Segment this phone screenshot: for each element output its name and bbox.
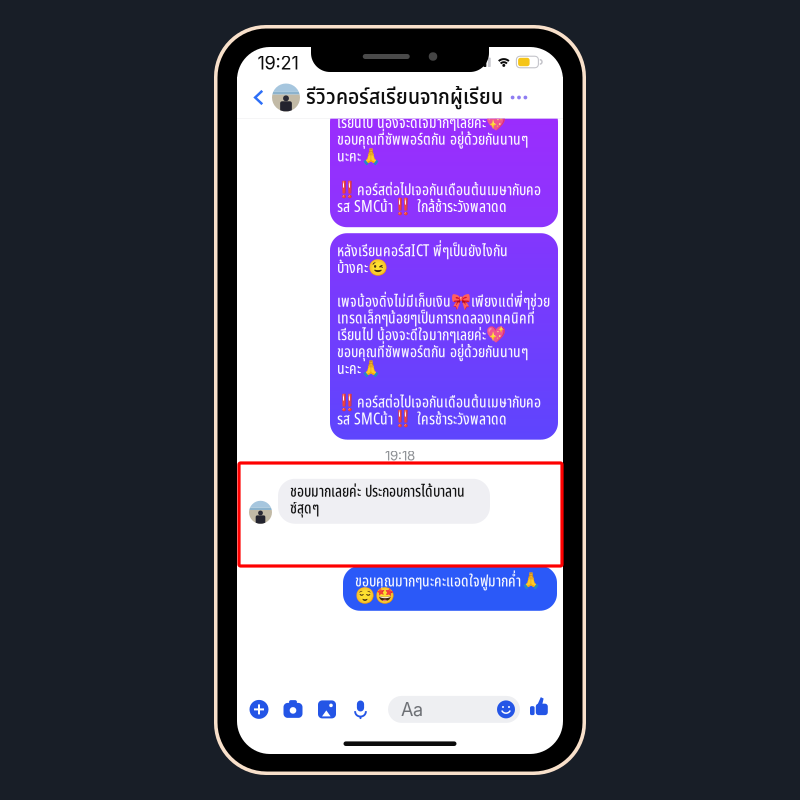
staticText: หลังเรียนคอร์สICT พี่ๆเป็นยังไงกัน	[337, 239, 508, 263]
staticText: บ้างคะ😉	[337, 256, 388, 280]
button[interactable]: Photo library	[310, 691, 344, 727]
button[interactable]: Back	[248, 79, 270, 115]
staticText: ชอบมากเลยค่ะ ประกอบการได้บาลาน	[290, 480, 465, 504]
staticText: ขอบคุณมากๆนะคะแอดใจฟูมากค่ำ🙏	[355, 569, 541, 594]
staticText: เพจน้องดิ่งไม่มีเก็บเงิน🎀เพียงแต่พี่ๆช่ว…	[337, 290, 550, 314]
button[interactable]: Conversation profile photo	[270, 83, 306, 111]
staticText: เรียนไป น้องจะดีใจมากๆเลยค่ะ💖	[337, 111, 506, 135]
staticText: ขอบคุณที่ซัพพอร์ตกัน อยู่ด้วยกันนานๆ	[337, 340, 528, 364]
staticText: Aa	[401, 698, 423, 720]
staticText: ขอบคุณที่ซัพพอร์ตกัน อยู่ด้วยกันนานๆ	[337, 128, 528, 152]
button[interactable]: Message text field	[388, 696, 520, 723]
staticText: 😌🤩	[355, 586, 395, 605]
staticText: รส SMCน้า‼️ ใกล้ช้าระวังพลาดด	[337, 195, 507, 219]
staticText: 19:21	[257, 52, 298, 74]
staticText: เรียนไป น้องจะดีใจมากๆเลยค่ะ💖	[337, 323, 506, 347]
button[interactable]: Camera	[276, 691, 310, 727]
staticText: รีวิวคอร์สเรียนจากผู้เรียน	[306, 81, 503, 114]
button[interactable]: Send a like	[520, 691, 552, 727]
button[interactable]: Open actions	[242, 691, 276, 727]
button[interactable]: More options	[506, 82, 532, 112]
button[interactable]: Record voice message	[344, 691, 377, 727]
staticText: ซ์สุดๆ	[290, 497, 319, 521]
staticText: 19:18	[385, 448, 415, 464]
staticText	[337, 161, 341, 186]
staticText: รส SMCน้า‼️ ใครช้าระวังพลาดด	[337, 407, 507, 432]
staticText: เทรดเล็กๆน้อยๆเป็นการทดลองเทคนิคที่	[337, 306, 535, 331]
staticText: ‼️คอร์สต่อไปเจอกันเดือนต้นเมษากับคอ	[337, 391, 541, 415]
staticText: นะคะ🙏	[337, 357, 381, 381]
staticText: ‼️คอร์สต่อไปเจอกันเดือนต้นเมษากับคอ	[337, 178, 541, 202]
button[interactable]: รีวิวคอร์สเรียนจากผู้เรียน	[306, 81, 506, 114]
staticText: นะคะ🙏	[337, 145, 381, 169]
